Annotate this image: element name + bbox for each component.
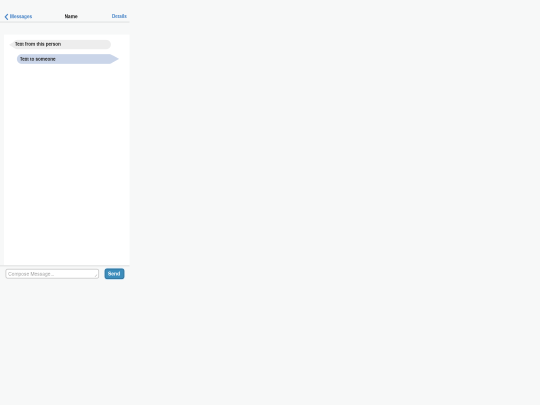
staticText: Send [108,270,156,298]
button[interactable]: Compose Message... [6,269,99,278]
button[interactable]: Send [104,268,125,280]
staticText: Compose Message... [8,270,192,298]
staticText: Text to someone [20,55,163,82]
button[interactable]: Details [110,0,129,22]
staticText: Details [112,13,171,39]
button[interactable]: Messages [0,0,30,22]
staticText: Name [64,13,117,40]
staticText: Messages [10,13,98,40]
staticText: Text from this person [15,41,199,67]
